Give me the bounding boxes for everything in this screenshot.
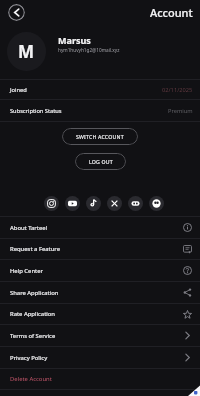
button[interactable]: GitHub (149, 196, 164, 211)
button[interactable]: Request a Feature (0, 239, 200, 259)
button[interactable]: LOG OUT (75, 153, 126, 170)
button[interactable]: Delete Account (0, 369, 200, 389)
button[interactable]: SWITCH ACCOUNT (62, 128, 138, 145)
staticText: M (18, 40, 35, 63)
button[interactable]: YouTube (65, 196, 80, 211)
staticText: Account (150, 5, 193, 20)
staticText: Request a Feature (10, 245, 60, 253)
staticText: SWITCH ACCOUNT (76, 133, 124, 140)
staticText: Privacy Policy (10, 354, 48, 362)
staticText: Share Application (10, 289, 59, 297)
staticText: Terms of Service (10, 332, 56, 340)
staticText: Delete Account (10, 375, 52, 383)
staticText: LOG OUT (89, 158, 113, 165)
button[interactable]: Back (8, 4, 25, 21)
staticText: 02/11/2025 (162, 86, 193, 94)
staticText: Help Center (10, 267, 43, 275)
staticText: Subscription Status (10, 107, 62, 115)
staticText: hym1huvyh1g2@10mail.xyz (58, 47, 120, 53)
staticText: Premium (168, 107, 193, 115)
staticText: Rate Application (10, 310, 55, 318)
staticText: About Tarteel (10, 224, 48, 232)
staticText: Joined (10, 86, 27, 94)
button[interactable]: Terms of Service (0, 325, 200, 346)
button[interactable]: Rate Application (0, 304, 200, 324)
button[interactable]: TikTok (86, 196, 101, 211)
button[interactable]: Help Center (0, 260, 200, 281)
button[interactable]: Instagram (44, 196, 59, 211)
button[interactable]: Discord (128, 196, 143, 211)
button[interactable]: About Tarteel (0, 217, 200, 238)
button[interactable]: Privacy Policy (0, 347, 200, 368)
button[interactable]: Share Application (0, 282, 200, 303)
staticText: Marsus (58, 34, 91, 46)
button[interactable]: X (107, 196, 122, 211)
